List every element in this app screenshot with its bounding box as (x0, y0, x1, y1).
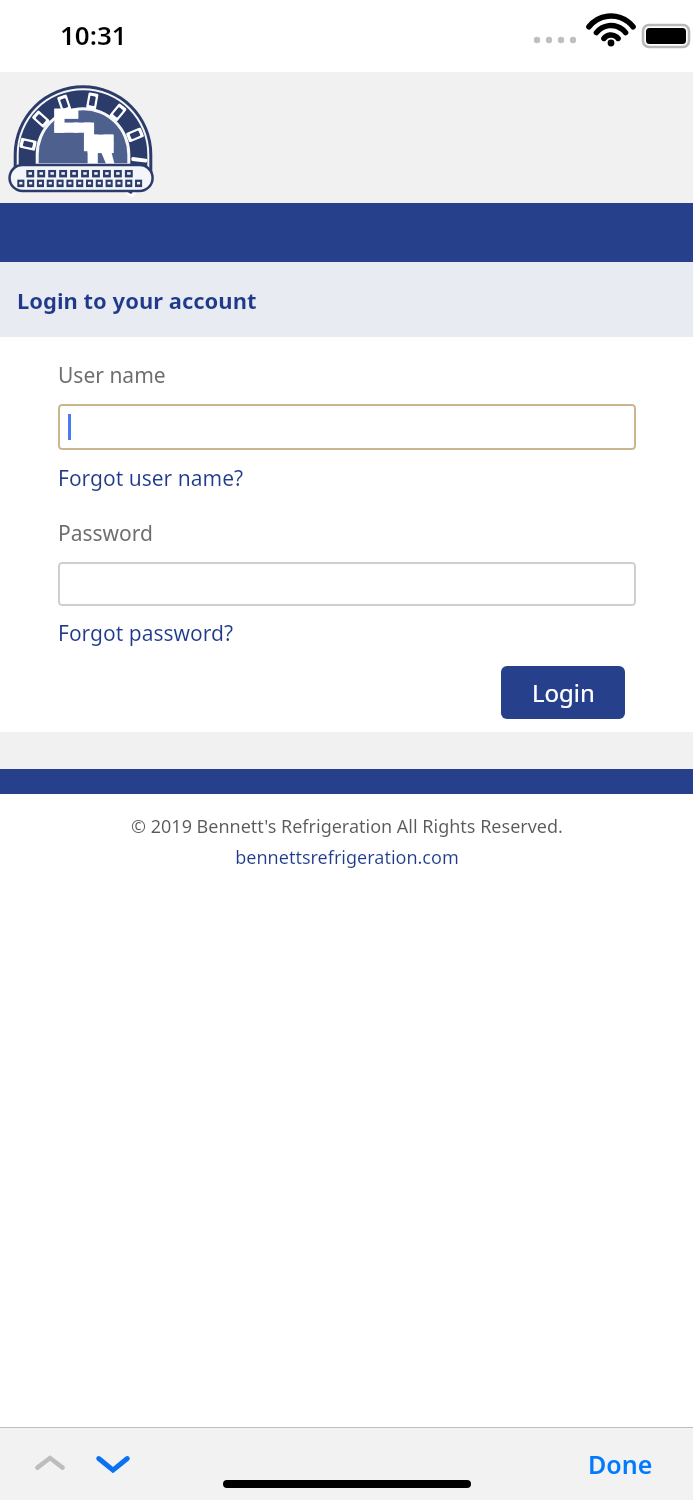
staticText: Done (588, 1447, 653, 1481)
button[interactable]: Previous field (24, 1438, 76, 1490)
staticText: Login (532, 676, 595, 709)
button[interactable]: User name field (58, 404, 636, 450)
button[interactable]: Forgot password? (58, 619, 234, 648)
button[interactable]: Next field (86, 1437, 140, 1491)
staticText: User name (58, 361, 166, 390)
button[interactable]: bennettsrefrigeration.com (235, 845, 459, 870)
button[interactable]: Done (588, 1447, 653, 1481)
staticText: Password (58, 519, 153, 548)
button[interactable]: Password field (58, 562, 636, 606)
staticText: 10:31 (60, 17, 127, 52)
button[interactable]: Login (501, 666, 625, 719)
button[interactable]: Forgot user name? (58, 464, 244, 493)
staticText: © 2019 Bennett's Refrigeration All Right… (131, 814, 563, 839)
staticText: Login to your account (17, 285, 257, 315)
